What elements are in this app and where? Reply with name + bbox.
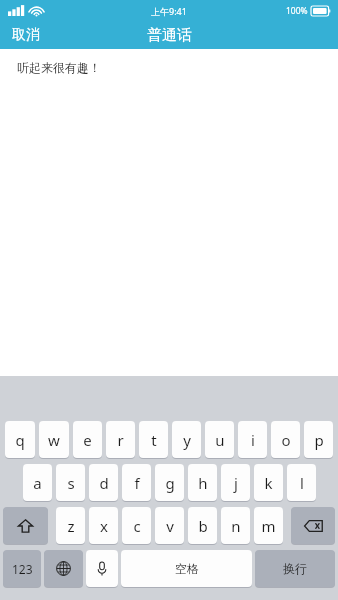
button[interactable]: b [188,507,217,544]
button[interactable]: j [221,464,250,501]
staticText: x [100,516,108,536]
staticText: 100% [286,5,308,17]
button[interactable]: l [287,464,316,501]
staticText: p [314,430,324,450]
button[interactable]: n [221,507,250,544]
button[interactable]: z [56,507,85,544]
staticText: u [215,430,225,450]
staticText: y [183,430,191,450]
staticText: 普通话 [147,26,192,45]
button[interactable]: h [188,464,217,501]
button[interactable]: v [155,507,184,544]
button[interactable]: s [56,464,85,501]
staticText: r [117,430,124,450]
staticText: a [33,473,42,493]
button[interactable]: 123 [3,550,41,587]
staticText: h [198,473,208,493]
staticText: n [231,516,241,536]
staticText: q [15,430,25,450]
button[interactable] [3,507,48,544]
button[interactable]: f [122,464,151,501]
staticText: t [151,430,157,450]
staticText: z [67,516,75,536]
button[interactable]: k [254,464,283,501]
staticText: 上午9:41 [151,5,187,17]
staticText: 取消 [12,26,40,44]
button[interactable] [44,550,83,587]
staticText: 空格 [175,561,199,576]
other: Backspace [291,507,335,545]
button[interactable]: i [238,421,267,458]
button[interactable]: d [89,464,118,501]
staticText: c [133,516,141,536]
button[interactable]: 取消 [0,22,52,48]
staticText: o [281,430,291,450]
button[interactable]: p [304,421,333,458]
staticText: i [251,430,255,450]
button[interactable]: r [106,421,135,458]
button[interactable]: m [254,507,283,544]
button[interactable]: c [122,507,151,544]
staticText: j [234,473,238,493]
other: Shift [3,507,48,545]
button[interactable] [86,550,118,587]
button[interactable]: e [73,421,102,458]
button[interactable]: w [39,421,69,458]
staticText: g [165,473,175,493]
staticText: s [67,473,75,493]
staticText: 123 [12,561,33,577]
button[interactable]: 空格 [121,550,252,587]
button[interactable]: y [172,421,201,458]
staticText: 听起来很有趣！ [17,60,101,75]
button[interactable]: 换行 [255,550,335,587]
button[interactable]: o [271,421,300,458]
button[interactable]: q [5,421,35,458]
staticText: w [48,430,60,450]
button[interactable]: t [139,421,168,458]
staticText: f [134,473,140,493]
staticText: 换行 [283,561,307,576]
button[interactable]: x [89,507,118,544]
button[interactable]: g [155,464,184,501]
staticText: l [300,473,304,493]
staticText: m [261,516,276,536]
button[interactable]: a [23,464,52,501]
other: Dictation [86,550,118,588]
button[interactable]: u [205,421,234,458]
staticText: b [198,516,208,536]
button[interactable] [291,507,335,544]
staticText: e [83,430,92,450]
staticText: d [99,473,109,493]
staticText: v [166,516,174,536]
other: Switch keyboard [44,550,83,588]
staticText: k [264,473,273,493]
